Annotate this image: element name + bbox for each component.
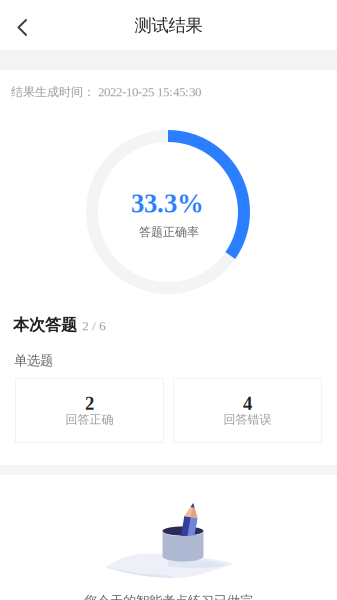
staticText: 回答正确 (65, 412, 113, 427)
staticText: 4 (243, 393, 252, 414)
staticText: 2 (85, 393, 94, 414)
staticText: 33.3% (131, 189, 204, 218)
staticText: 本次答题 (13, 315, 77, 335)
staticText: 您今天的智能考点练习已做完 (84, 593, 253, 600)
staticText: 测试结果 (134, 15, 202, 36)
staticText: 结果生成时间： (11, 85, 95, 99)
button[interactable]: Back (2, 5, 46, 49)
staticText: 答题正确率 (139, 225, 199, 239)
staticText: 2 / 6 (82, 318, 106, 333)
staticText: 单选题 (14, 352, 53, 369)
staticText: 2022-10-25 15:45:30 (98, 85, 201, 99)
staticText: 回答错误 (223, 412, 271, 427)
